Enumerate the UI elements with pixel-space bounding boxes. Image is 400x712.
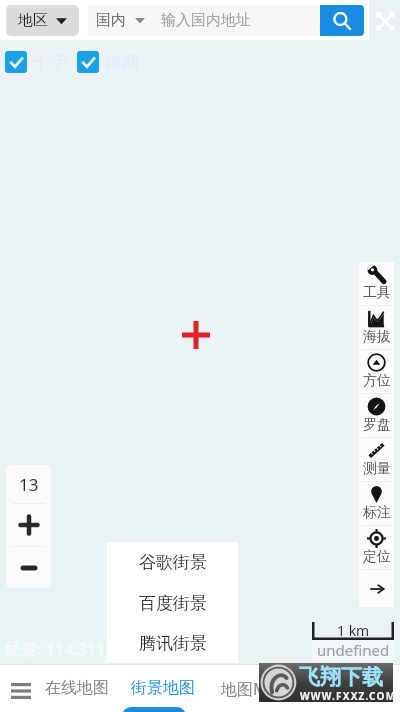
button[interactable]: Menu (6, 676, 35, 705)
button[interactable]: 在线地图 (45, 673, 109, 703)
button[interactable]: Collapse toolbar (359, 570, 394, 607)
staticText: 腾讯街景 (139, 633, 207, 654)
staticText: 海拔 (363, 328, 391, 346)
button[interactable]: 方位 (359, 350, 394, 393)
button[interactable]: 路网 (77, 51, 139, 73)
button[interactable]: 测量 (359, 438, 394, 481)
button[interactable]: Fullscreen (375, 11, 395, 31)
staticText: 定位 (363, 548, 391, 566)
button[interactable]: 国内 (88, 5, 320, 36)
button[interactable]: 定位 (359, 526, 394, 569)
staticText: 标注 (363, 504, 391, 522)
button[interactable]: 街景地图 (131, 673, 195, 703)
staticText: 方位 (363, 372, 391, 390)
button[interactable]: 腾讯街景 (107, 623, 238, 663)
staticText: 1 km (337, 621, 370, 639)
staticText: 谷歌街景 (139, 552, 207, 573)
staticText: 百度街景 (139, 593, 207, 614)
staticText: 工具 (363, 284, 391, 302)
button[interactable]: Zoom in (6, 504, 51, 546)
button[interactable]: 罗盘 (359, 394, 394, 437)
button[interactable]: 地图M (221, 673, 268, 705)
staticText: 罗盘 (363, 416, 391, 434)
staticText: WWW.FXXZ.COM (300, 689, 397, 703)
button[interactable]: 工具 (359, 262, 394, 305)
staticText: 输入国内地址 (161, 11, 251, 30)
button[interactable]: 地区 (6, 5, 79, 36)
button[interactable]: 海拔 (359, 306, 394, 349)
staticText: 国内 (96, 11, 126, 30)
staticText: undefined (317, 640, 390, 660)
button[interactable]: Search (320, 5, 364, 36)
button[interactable]: 百度街景 (107, 583, 238, 623)
button[interactable]: 十字 (5, 51, 67, 73)
staticText: 经度: 114.31158 纬度 (5, 638, 160, 660)
button[interactable]: 谷歌街景 (107, 542, 238, 583)
button[interactable]: 13 (6, 465, 51, 503)
staticText: 地区 (18, 11, 48, 30)
staticText: 路网 (105, 52, 139, 73)
staticText: 飞翔下载 (299, 664, 383, 690)
button[interactable]: 标注 (359, 482, 394, 525)
staticText: 13 (19, 473, 39, 496)
staticText: 十字 (33, 52, 67, 73)
staticText: 测量 (363, 460, 391, 478)
button[interactable]: Zoom out (6, 547, 51, 588)
